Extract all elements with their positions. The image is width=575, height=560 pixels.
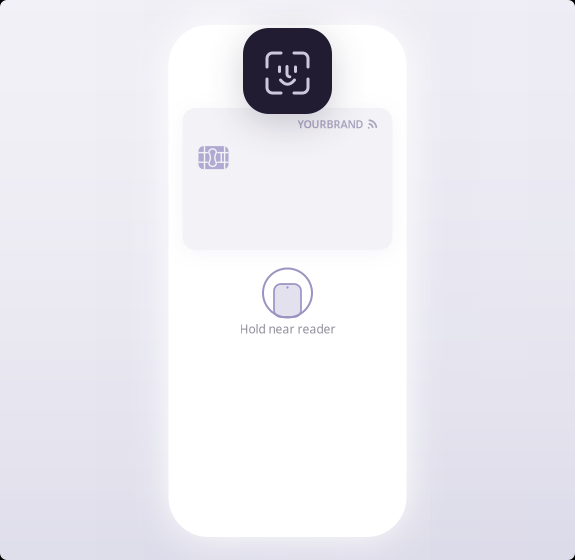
button[interactable]: Face ID: [243, 28, 332, 114]
staticText: Hold near reader: [239, 321, 335, 337]
staticText: YOURBRAND: [297, 117, 363, 131]
